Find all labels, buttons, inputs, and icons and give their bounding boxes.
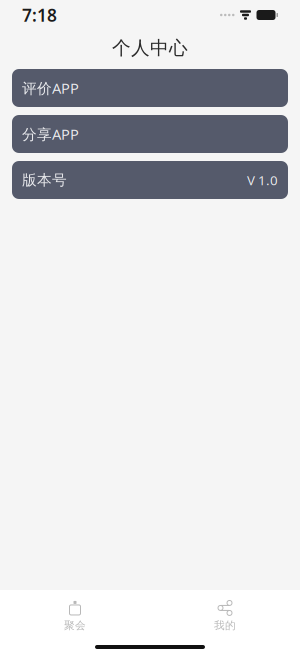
staticText: 评价APP xyxy=(22,78,79,98)
staticText: 版本号 xyxy=(22,171,67,189)
staticText: 分享APP xyxy=(22,124,79,144)
staticText: 我的 xyxy=(214,619,236,632)
staticText: 个人中心 xyxy=(112,36,188,59)
staticText: 7:18 xyxy=(22,3,57,26)
staticText: V 1.0 xyxy=(247,171,278,189)
button[interactable]: 版本号 xyxy=(12,161,288,199)
button[interactable]: 评价APP xyxy=(12,69,288,107)
staticText: 聚会 xyxy=(64,619,86,632)
button[interactable]: 我的 xyxy=(150,594,300,638)
button[interactable]: 分享APP xyxy=(12,115,288,153)
button[interactable]: 聚会 xyxy=(0,594,150,638)
